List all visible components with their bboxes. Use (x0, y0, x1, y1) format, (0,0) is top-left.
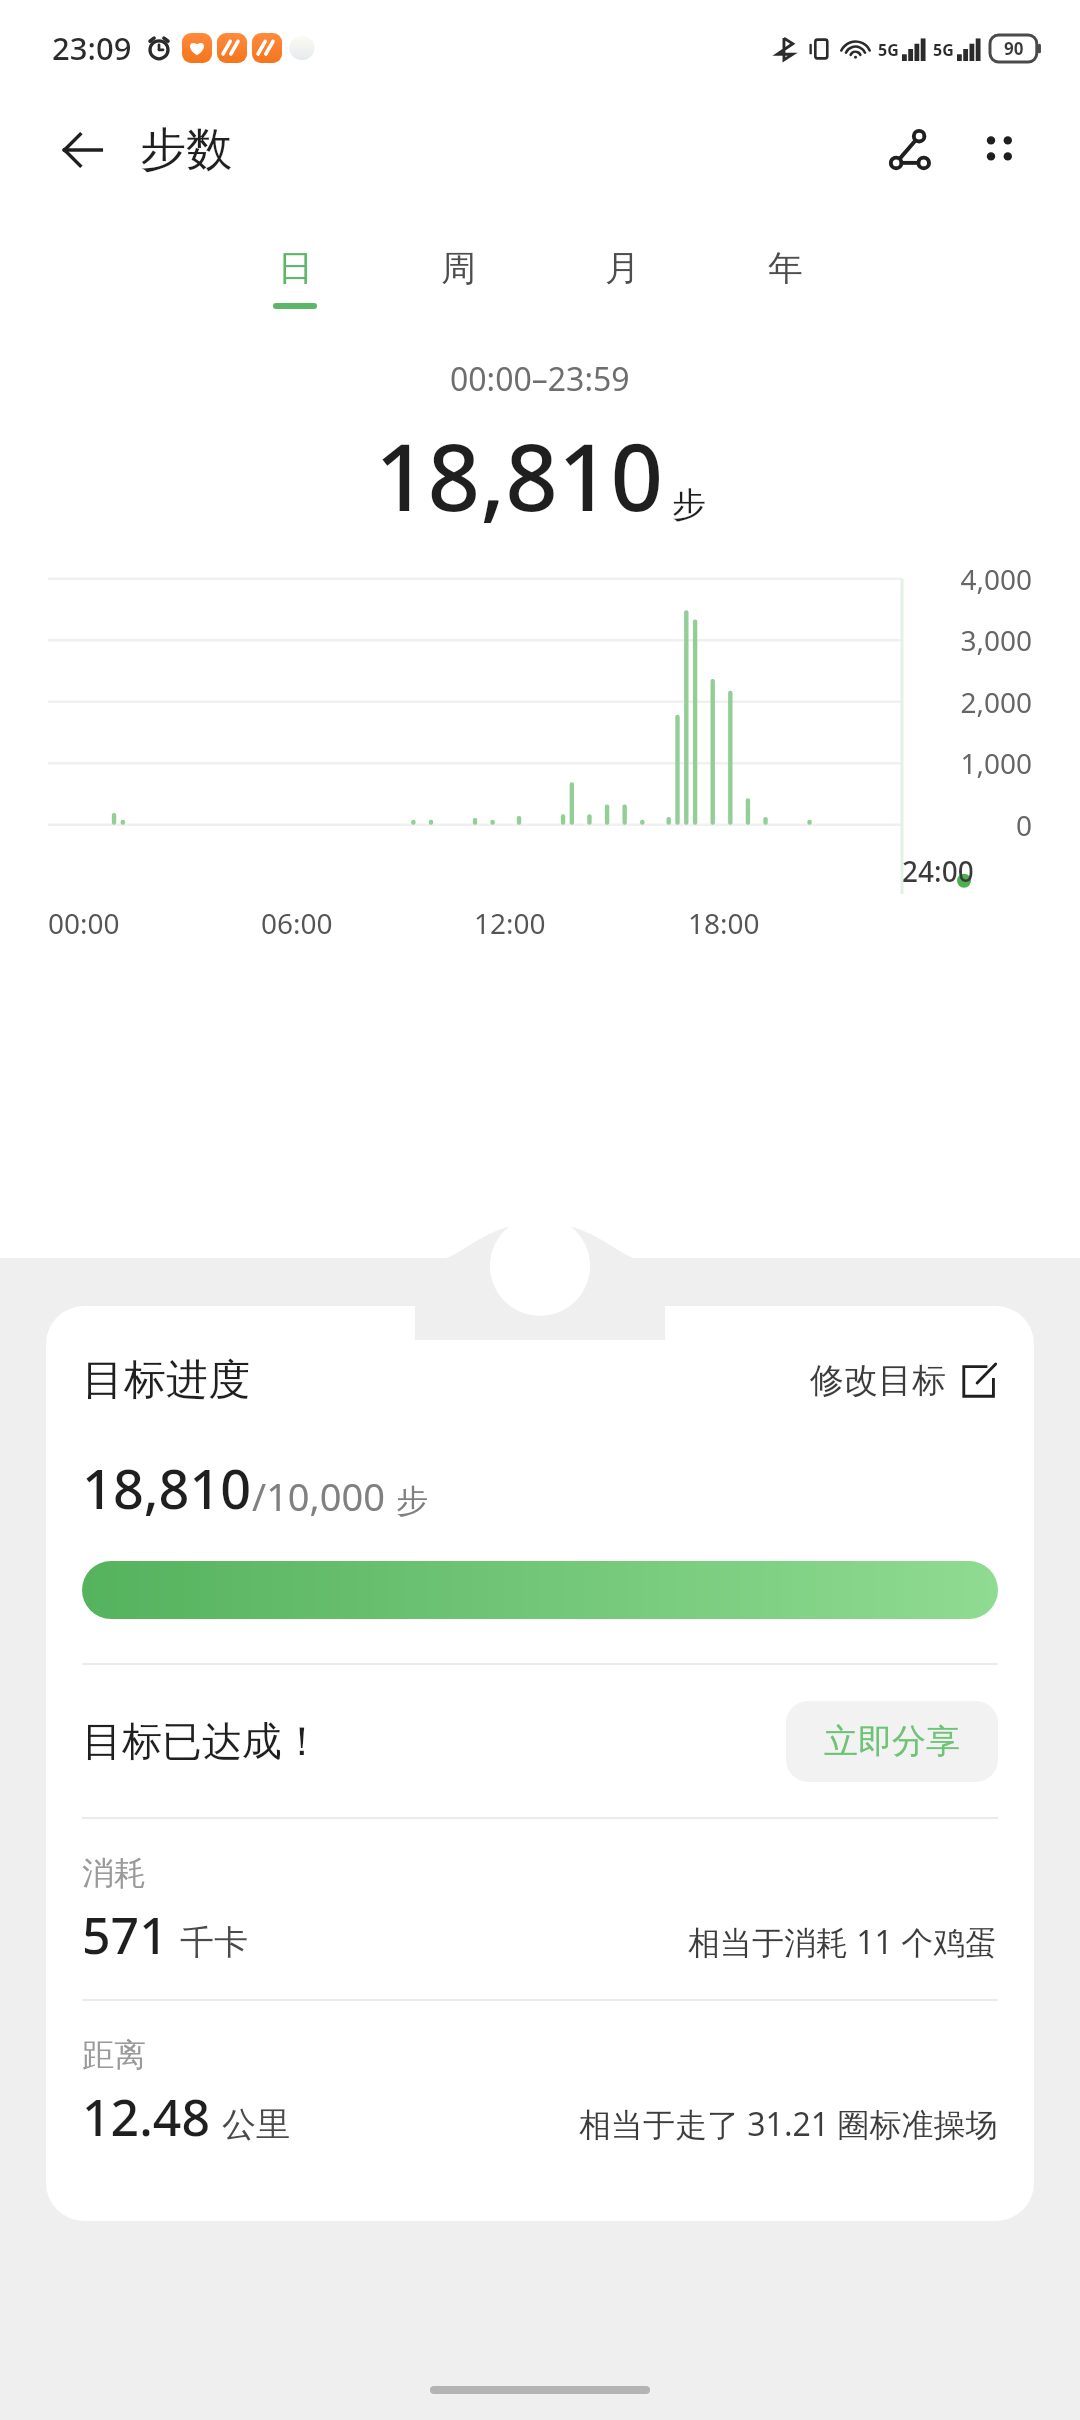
staticText: 4,000 (912, 560, 1032, 598)
staticText: 消耗 (82, 1853, 146, 1893)
staticText: 2,000 (912, 683, 1032, 721)
button[interactable]: 修改目标 (810, 1359, 998, 1402)
staticText: 相当于消耗 11 个鸡蛋 (688, 1920, 998, 1964)
staticText: 0 (912, 806, 1032, 844)
staticText: 目标进度 (82, 1354, 250, 1407)
staticText: 23:09 (52, 27, 132, 69)
staticText: 571 (82, 1901, 168, 1969)
button[interactable]: 年 (740, 246, 830, 309)
staticText: 相当于走了 31.21 圈标准操场 (579, 2102, 998, 2146)
button[interactable]: More options (964, 115, 1034, 185)
staticText: 公里 (222, 2103, 290, 2146)
staticText: 立即分享 (824, 1720, 960, 1763)
staticText: /10,000 (252, 1470, 386, 1522)
staticText: 步 (396, 1481, 428, 1521)
staticText: 00:00 (48, 904, 120, 942)
staticText: 5G (878, 39, 899, 61)
staticText: 修改目标 (810, 1359, 946, 1402)
staticText: 目标已达成！ (82, 1716, 322, 1766)
button[interactable]: 月 (577, 246, 667, 309)
staticText: 06:00 (261, 904, 333, 942)
button[interactable]: Back (50, 118, 114, 182)
staticText: 1,000 (912, 744, 1032, 782)
button[interactable]: 距离 (82, 2001, 998, 2181)
staticText: 3,000 (912, 621, 1032, 659)
button[interactable]: Share (874, 115, 944, 185)
staticText: 12:00 (474, 904, 546, 942)
staticText: 18,810 (375, 413, 664, 538)
staticText: 5G (933, 39, 954, 61)
button[interactable]: 立即分享 (786, 1701, 998, 1782)
staticText: 00:00–23:59 (450, 357, 630, 401)
staticText: 周 (441, 246, 476, 290)
staticText: 日 (278, 246, 313, 290)
button[interactable]: 周 (413, 246, 503, 309)
staticText: 12.48 (82, 2083, 210, 2151)
button[interactable]: 日 (250, 246, 340, 309)
staticText: 年 (768, 246, 803, 290)
staticText: 距离 (82, 2035, 146, 2075)
staticText: 24:00 (902, 852, 974, 890)
staticText: 步数 (140, 121, 232, 179)
staticText: 千卡 (180, 1921, 248, 1964)
button[interactable]: 消耗 (82, 1819, 998, 1999)
staticText: 18:00 (688, 904, 760, 942)
staticText: 步 (672, 483, 706, 526)
staticText: 月 (605, 246, 640, 290)
staticText: 18,810 (82, 1451, 252, 1525)
staticText: 90 (1004, 37, 1024, 60)
